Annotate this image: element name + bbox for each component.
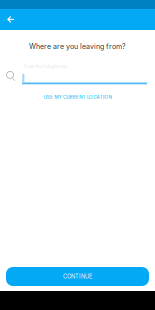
button[interactable]: Back: [0, 9, 24, 30]
button[interactable]: USE MY CURRENT LOCATION: [0, 91, 155, 103]
staticText: Enter the full address: [24, 64, 67, 69]
button[interactable]: CONTINUE: [6, 267, 149, 286]
staticText: CONTINUE: [63, 273, 92, 280]
staticText: Where are you leaving from?: [29, 42, 126, 51]
staticText: USE MY CURRENT LOCATION: [44, 94, 111, 100]
